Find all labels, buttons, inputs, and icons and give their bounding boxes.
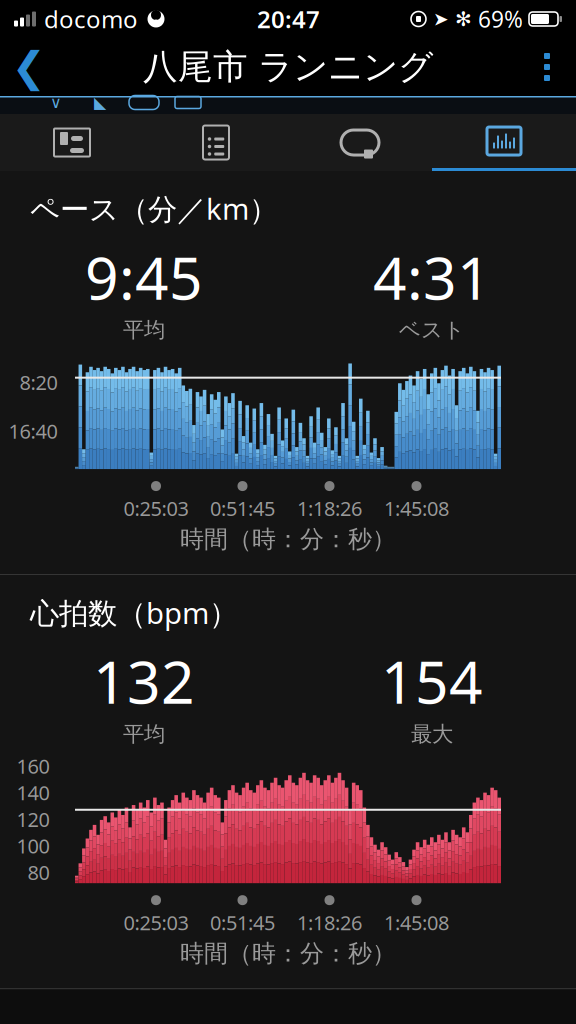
staticText: 1:18:26 xyxy=(297,909,362,936)
staticText: 4:31 xyxy=(373,238,491,316)
staticText: 1:45:08 xyxy=(384,495,449,522)
staticText: 0:51:45 xyxy=(210,909,275,936)
staticText: 69% xyxy=(478,4,523,34)
button[interactable]: Charts xyxy=(432,114,576,171)
staticText: 最大 xyxy=(411,721,453,747)
staticText: 9:45 xyxy=(85,238,203,316)
staticText: ❮ xyxy=(11,43,46,90)
staticText: 140 xyxy=(16,779,49,806)
staticText: 時間（時：分：秒） xyxy=(180,525,396,554)
staticText: 平均 xyxy=(123,317,165,343)
staticText: 1:18:26 xyxy=(297,495,362,522)
staticText: 1:45:08 xyxy=(384,909,449,936)
staticText: 16:40 xyxy=(8,418,57,444)
staticText: 0:25:03 xyxy=(123,909,188,936)
button[interactable]: Details xyxy=(144,114,288,171)
staticText: ベスト xyxy=(399,317,465,343)
button[interactable]: Map xyxy=(0,114,144,171)
button[interactable]: Laps xyxy=(288,114,432,171)
staticText: 時間（時：分：秒） xyxy=(180,939,396,968)
staticText: 160 xyxy=(16,753,49,779)
staticText: 80 xyxy=(27,859,49,886)
staticText: 120 xyxy=(16,806,49,832)
staticText: 八尾市 ランニング xyxy=(143,46,433,88)
button[interactable]: More options xyxy=(518,38,576,96)
staticText: ◣ xyxy=(94,93,106,112)
staticText: 132 xyxy=(93,642,195,720)
staticText: 心拍数（bpm） xyxy=(30,593,238,632)
staticText: ✻ xyxy=(455,8,472,30)
button[interactable]: Back xyxy=(0,38,58,96)
staticText: 平均 xyxy=(123,721,165,747)
staticText: 154 xyxy=(381,642,483,720)
staticText: 0:51:45 xyxy=(210,495,275,522)
staticText: 8:20 xyxy=(19,369,57,396)
staticText: 0:25:03 xyxy=(123,495,188,522)
staticText: 20:47 xyxy=(257,3,320,35)
staticText: 100 xyxy=(16,832,49,859)
staticText: ➤ xyxy=(433,8,449,30)
staticText: ∨ xyxy=(50,93,62,112)
staticText: ペース（分／km） xyxy=(30,189,278,228)
staticText: docomo xyxy=(44,3,138,35)
